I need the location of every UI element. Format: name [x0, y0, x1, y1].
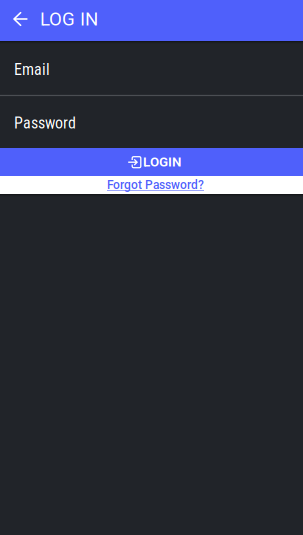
staticText: LOGIN — [143, 154, 181, 170]
staticText: Email — [14, 60, 50, 79]
button[interactable]: LOGIN — [0, 148, 303, 176]
staticText: Password — [14, 114, 76, 132]
staticText: LOG IN — [40, 8, 98, 30]
button[interactable]: Back — [0, 0, 40, 41]
button[interactable]: Forgot Password? — [0, 176, 303, 194]
staticText: Forgot Password? — [107, 178, 204, 192]
